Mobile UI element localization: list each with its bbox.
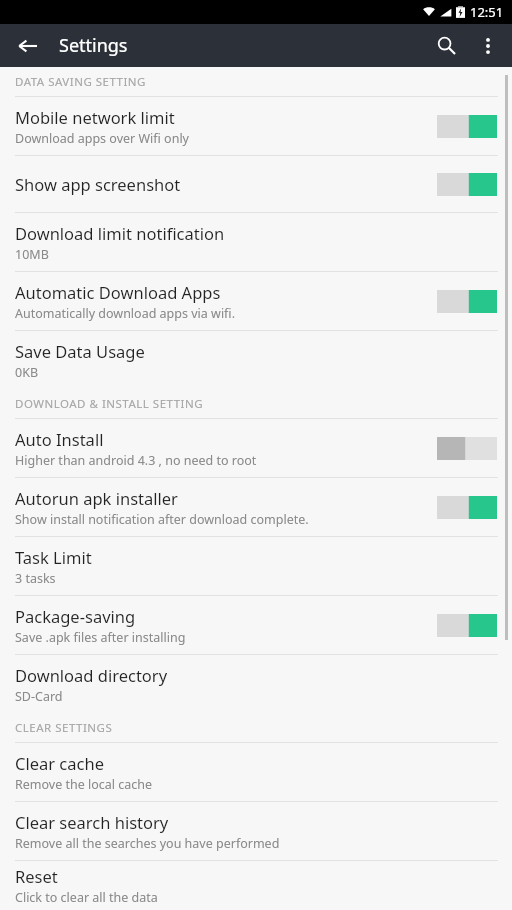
staticText: 10MB (15, 246, 49, 263)
staticText: Task Limit (15, 546, 92, 568)
button[interactable]: Package-saving (0, 596, 512, 655)
button[interactable]: Toggle on (437, 290, 497, 313)
button[interactable]: Toggle off (437, 437, 497, 460)
staticText: Remove the local cache (15, 776, 153, 793)
button[interactable]: Reset (0, 861, 512, 910)
button[interactable]: Download limit notification (0, 213, 512, 272)
staticText: Click to clear all the data (15, 889, 158, 906)
staticText: Settings (59, 33, 128, 58)
staticText: Save .apk files after installing (15, 629, 186, 646)
staticText: Autorun apk installer (15, 487, 178, 509)
staticText: SD-Card (15, 688, 63, 705)
staticText: Automatic Download Apps (15, 281, 221, 303)
button[interactable]: Toggle on (437, 496, 497, 519)
staticText: DATA SAVING SETTING (15, 74, 146, 90)
staticText: Automatically download apps via wifi. (15, 305, 235, 322)
staticText: Show app screenshot (15, 173, 181, 195)
button[interactable]: More options (468, 26, 508, 66)
button[interactable]: Toggle on (437, 614, 497, 637)
button[interactable]: Clear cache (0, 743, 512, 802)
button[interactable]: Toggle on (437, 115, 497, 138)
staticText: CLEAR SETTINGS (15, 720, 113, 736)
staticText: Download directory (15, 664, 168, 686)
button[interactable]: Show app screenshot (0, 156, 512, 213)
button[interactable]: Task Limit (0, 537, 512, 596)
button[interactable]: Save Data Usage (0, 331, 512, 389)
staticText: Mobile network limit (15, 106, 175, 128)
staticText: Clear search history (15, 811, 169, 833)
staticText: 0KB (15, 364, 39, 381)
button[interactable]: Download directory (0, 655, 512, 713)
button[interactable]: Toggle on (437, 173, 497, 196)
button[interactable]: Back (8, 26, 48, 66)
staticText: 3 tasks (15, 570, 56, 587)
button[interactable]: Automatic Download Apps (0, 272, 512, 331)
staticText: Package-saving (15, 605, 136, 627)
staticText: Higher than android 4.3 , no need to roo… (15, 452, 257, 469)
button[interactable]: Clear search history (0, 802, 512, 861)
staticText: Download apps over Wifi only (15, 130, 189, 147)
staticText: DOWNLOAD & INSTALL SETTING (15, 396, 204, 412)
staticText: Clear cache (15, 752, 104, 774)
button[interactable]: Autorun apk installer (0, 478, 512, 537)
button[interactable]: Auto Install (0, 419, 512, 478)
staticText: Download limit notification (15, 222, 225, 244)
staticText: Save Data Usage (15, 340, 145, 362)
staticText: Auto Install (15, 428, 104, 450)
staticText: Remove all the searches you have perform… (15, 835, 280, 852)
button[interactable]: Mobile network limit (0, 97, 512, 156)
button[interactable]: Search (424, 24, 468, 67)
staticText: Reset (15, 865, 58, 887)
staticText: 12:51 (470, 3, 504, 21)
staticText: Show install notification after download… (15, 511, 309, 528)
